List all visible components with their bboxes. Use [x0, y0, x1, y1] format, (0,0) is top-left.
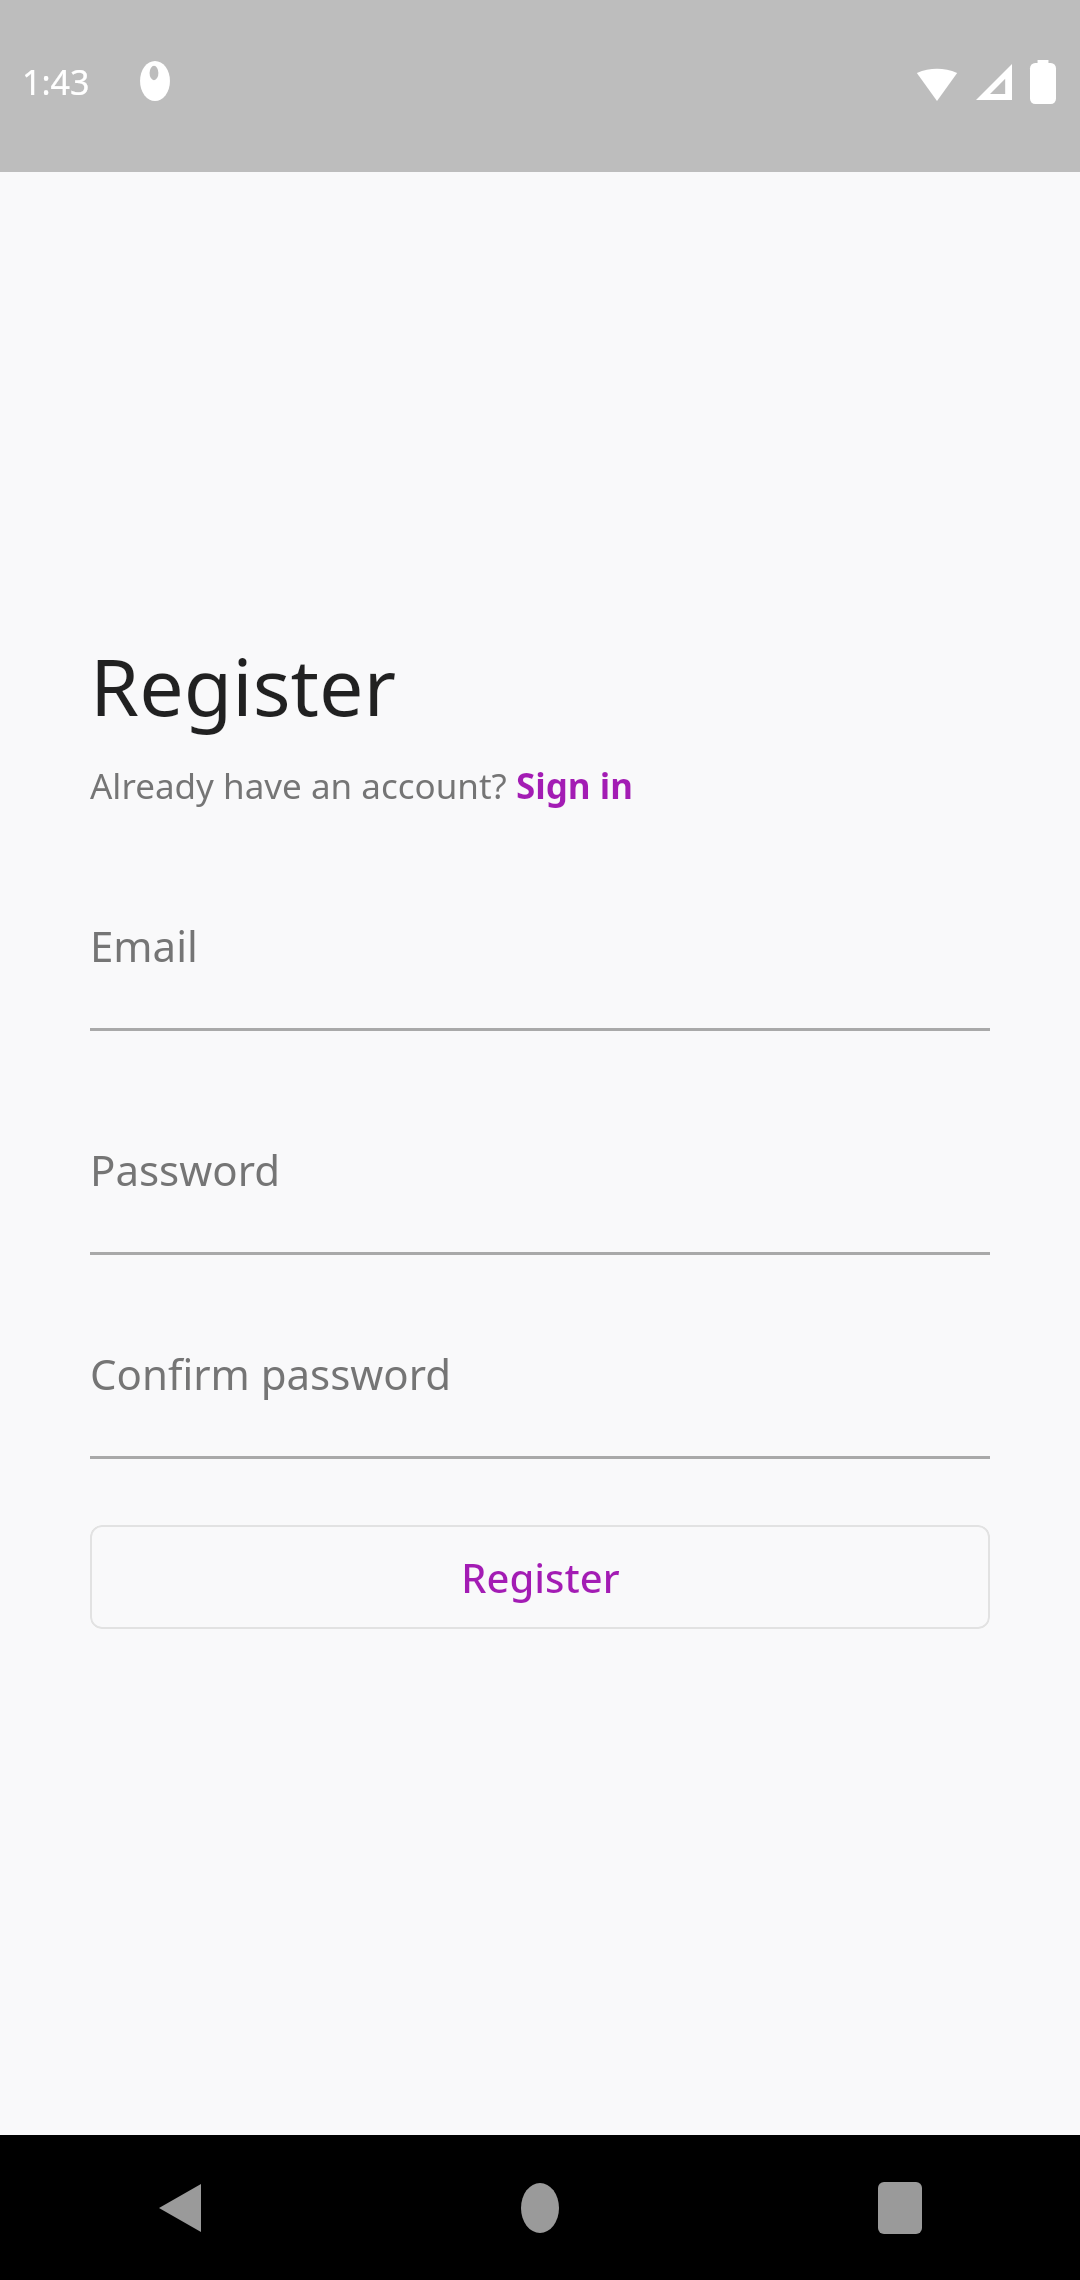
staticText: Register	[90, 632, 397, 740]
button[interactable]: Home	[360, 2135, 720, 2280]
button[interactable]: Back	[0, 2135, 360, 2280]
button[interactable]: Sign in	[516, 762, 633, 810]
button[interactable]: Confirm password	[90, 1345, 990, 1459]
staticText: Register	[461, 1550, 620, 1604]
button[interactable]: Recent apps	[720, 2135, 1080, 2280]
staticText: 1:43	[22, 59, 90, 105]
button[interactable]: Email	[90, 917, 990, 1031]
staticText: Sign in	[516, 762, 633, 810]
button[interactable]: Password	[90, 1141, 990, 1255]
staticText: Email	[90, 917, 198, 974]
button[interactable]: Register	[90, 1525, 990, 1629]
staticText: Confirm password	[90, 1345, 452, 1402]
staticText: Already have an account?	[90, 762, 516, 810]
staticText: Password	[90, 1141, 280, 1198]
